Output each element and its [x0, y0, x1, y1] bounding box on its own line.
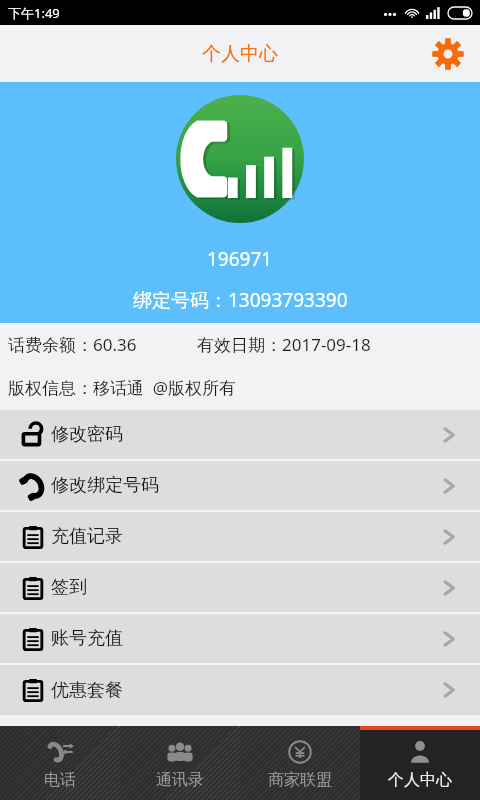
button[interactable]: 优惠套餐	[0, 665, 480, 715]
staticText: 个人中心	[202, 42, 278, 66]
staticText: 绑定号码：13093793390	[133, 287, 348, 313]
staticText: 196971	[207, 246, 273, 272]
button[interactable]: 修改绑定号码	[0, 461, 480, 510]
button[interactable]: 签到	[0, 563, 480, 612]
staticText: 账号充值	[51, 627, 123, 650]
button[interactable]: 商家联盟	[240, 726, 360, 800]
staticText: 下午1:49	[8, 4, 60, 22]
staticText: 电话	[44, 770, 76, 790]
button[interactable]: 修改密码	[0, 410, 480, 459]
button[interactable]: 通讯录	[120, 726, 240, 800]
staticText: 商家联盟	[268, 770, 332, 790]
staticText: 签到	[51, 576, 87, 599]
staticText: 版权信息：移话通 @版权所有	[8, 376, 237, 399]
staticText: 通讯录	[156, 770, 204, 790]
staticText: 话费余额：60.36	[8, 333, 137, 356]
staticText: 有效日期：2017-09-18	[197, 333, 371, 356]
staticText: 个人中心	[388, 770, 452, 790]
staticText: 充值记录	[51, 525, 123, 548]
staticText: 修改绑定号码	[51, 474, 159, 497]
staticText: 优惠套餐	[51, 679, 123, 702]
button[interactable]: 电话	[0, 726, 120, 800]
staticText: 修改密码	[51, 423, 123, 446]
button[interactable]: 个人中心	[360, 726, 480, 800]
button[interactable]: Settings	[426, 32, 470, 76]
button[interactable]: 账号充值	[0, 614, 480, 663]
button[interactable]: 充值记录	[0, 512, 480, 561]
